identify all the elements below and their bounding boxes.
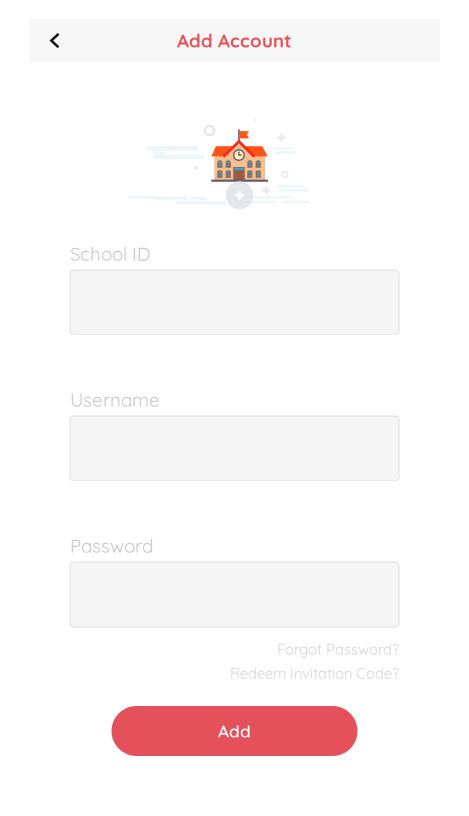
staticText: Username [70, 388, 160, 411]
staticText: Add [218, 720, 251, 742]
staticText: School ID [70, 242, 150, 265]
staticText: Forgot Password? [277, 640, 399, 658]
button[interactable]: Add [111, 706, 357, 756]
button[interactable]: Redeem Invitation Code? [230, 664, 399, 685]
button[interactable]: Forgot Password? [277, 640, 399, 664]
staticText: Redeem Invitation Code? [230, 664, 399, 682]
staticText: Password [70, 534, 153, 557]
button[interactable]: Back [29, 19, 76, 62]
staticText: Add Account [177, 29, 292, 52]
